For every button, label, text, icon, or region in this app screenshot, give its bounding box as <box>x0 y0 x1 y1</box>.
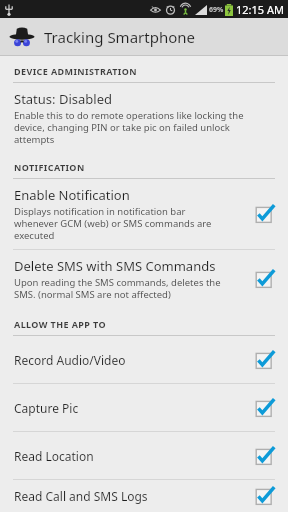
staticText: Enable this to do remote operations like… <box>14 109 244 146</box>
button[interactable]: Toggle setting <box>254 445 276 467</box>
staticText: Status: Disabled <box>14 90 112 108</box>
staticText: 69% <box>209 5 224 15</box>
button[interactable]: Capture Pic <box>0 384 288 431</box>
button[interactable]: Toggle setting <box>254 397 276 419</box>
button[interactable]: Status: Disabled <box>0 83 288 153</box>
staticText: 12:15 AM <box>236 2 284 17</box>
button[interactable]: Enable Notification <box>0 179 288 249</box>
staticText: Enable Notification <box>14 186 130 204</box>
staticText: Record Audio/Video <box>14 352 254 368</box>
staticText: ALLOW THE APP TO <box>14 318 106 330</box>
button[interactable]: Delete SMS with SMS Commands <box>0 250 288 308</box>
staticText: DEVICE ADMINISTRATION <box>14 65 137 77</box>
button[interactable]: Read Location <box>0 432 288 479</box>
staticText: Displays notification in notification ba… <box>14 205 212 242</box>
staticText: Delete SMS with SMS Commands <box>14 257 216 275</box>
staticText: Capture Pic <box>14 400 254 416</box>
button[interactable]: Tracking Smartphone <box>0 18 288 55</box>
staticText: Upon reading the SMS commands, deletes t… <box>14 276 221 301</box>
staticText: NOTIFICATION <box>14 161 85 173</box>
staticText: Read Call and SMS Logs <box>14 488 254 504</box>
staticText: Read Location <box>14 448 254 464</box>
button[interactable]: Toggle setting <box>254 203 276 225</box>
staticText: Tracking Smartphone <box>44 27 195 47</box>
button[interactable]: Toggle setting <box>254 349 276 371</box>
button[interactable]: Record Audio/Video <box>0 336 288 383</box>
button[interactable]: Read Call and SMS Logs <box>0 480 288 512</box>
button[interactable]: Toggle setting <box>254 485 276 507</box>
button[interactable]: Toggle setting <box>254 268 276 290</box>
